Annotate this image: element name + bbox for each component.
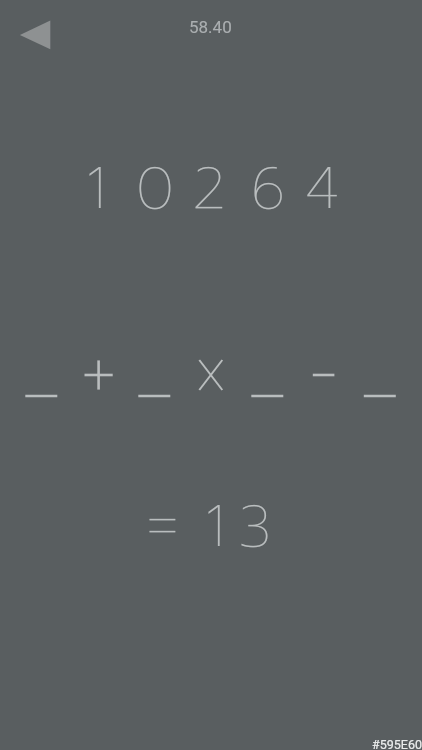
staticText: 6 bbox=[251, 144, 286, 233]
staticText: 3 bbox=[238, 482, 271, 571]
staticText: 2 bbox=[192, 144, 226, 233]
button[interactable]: Multiply bbox=[186, 347, 236, 403]
staticText: 1 bbox=[205, 482, 225, 571]
staticText: 4 bbox=[305, 144, 340, 233]
button[interactable]: Plus bbox=[74, 347, 124, 403]
staticText: 0 bbox=[136, 144, 174, 233]
staticText: #595E60 bbox=[372, 737, 422, 750]
button[interactable]: First number slot bbox=[16, 357, 66, 413]
staticText: 58.40 bbox=[189, 17, 232, 37]
button[interactable]: Minus bbox=[299, 347, 349, 403]
button[interactable]: Second number slot bbox=[129, 357, 179, 413]
button[interactable]: Third number slot bbox=[242, 357, 292, 413]
button[interactable]: Fourth number slot bbox=[355, 357, 405, 413]
staticText: = bbox=[146, 482, 179, 571]
button[interactable]: Back bbox=[8, 8, 60, 60]
staticText: 1 bbox=[86, 144, 106, 233]
